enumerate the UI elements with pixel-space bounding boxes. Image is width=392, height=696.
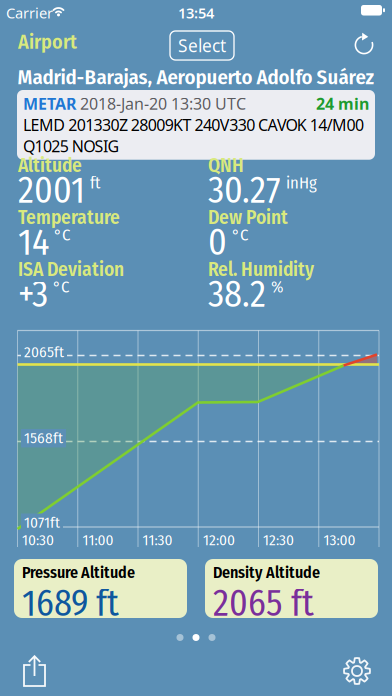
staticText: 14 — [18, 221, 49, 264]
staticText: % — [271, 277, 283, 297]
staticText: 0 — [208, 221, 227, 264]
staticText: QNH — [208, 154, 244, 177]
staticText: 11:00 — [82, 531, 113, 549]
staticText: 13:00 — [323, 531, 355, 549]
staticText: Carrier — [6, 3, 53, 22]
staticText: Temperature — [18, 206, 120, 229]
staticText: ISA Deviation — [18, 258, 124, 281]
staticText: Rel. Humidity — [208, 258, 314, 281]
button[interactable]: Share — [22, 655, 47, 687]
staticText: +3 — [18, 273, 48, 316]
button[interactable]: Select — [170, 31, 234, 60]
staticText: Madrid-Barajas, Aeropuerto Adolfo Suárez — [17, 65, 374, 90]
staticText: METAR — [23, 93, 76, 114]
staticText: Dew Point — [208, 206, 288, 229]
staticText: °C — [232, 225, 248, 245]
staticText: 2065ft — [24, 343, 64, 361]
staticText: ft — [90, 173, 100, 193]
staticText: Select — [178, 34, 226, 57]
staticText: 2065 ft — [213, 582, 314, 625]
staticText: 12:30 — [263, 531, 294, 549]
staticText: °C — [53, 277, 69, 297]
staticText: °C — [54, 225, 70, 245]
staticText: 2001 — [18, 169, 85, 212]
staticText: 38.2 — [208, 273, 266, 316]
staticText: Density Altitude — [213, 563, 320, 582]
staticText: 1071ft — [24, 513, 60, 532]
staticText: inHg — [286, 173, 317, 193]
staticText: Airport — [18, 30, 77, 54]
staticText: Pressure Altitude — [22, 563, 135, 582]
staticText: 13:54 — [178, 3, 214, 22]
button[interactable]: Refresh — [349, 29, 379, 59]
staticText: 12:00 — [203, 531, 235, 549]
staticText: 11:30 — [142, 531, 172, 549]
staticText: 2018-Jan-20 13:30 UTC — [76, 93, 246, 114]
staticText: 10:30 — [22, 531, 54, 549]
staticText: 30.27 — [208, 169, 281, 212]
staticText: Altitude — [18, 154, 82, 177]
staticText: 1568ft — [24, 429, 63, 447]
staticText: Q1025 NOSIG — [23, 135, 119, 157]
staticText: 24 min — [316, 93, 369, 114]
staticText: LEMD 201330Z 28009KT 240V330 CAVOK 14/M0… — [23, 114, 364, 135]
button[interactable]: Settings — [343, 657, 371, 685]
staticText: 1689 ft — [22, 582, 119, 625]
